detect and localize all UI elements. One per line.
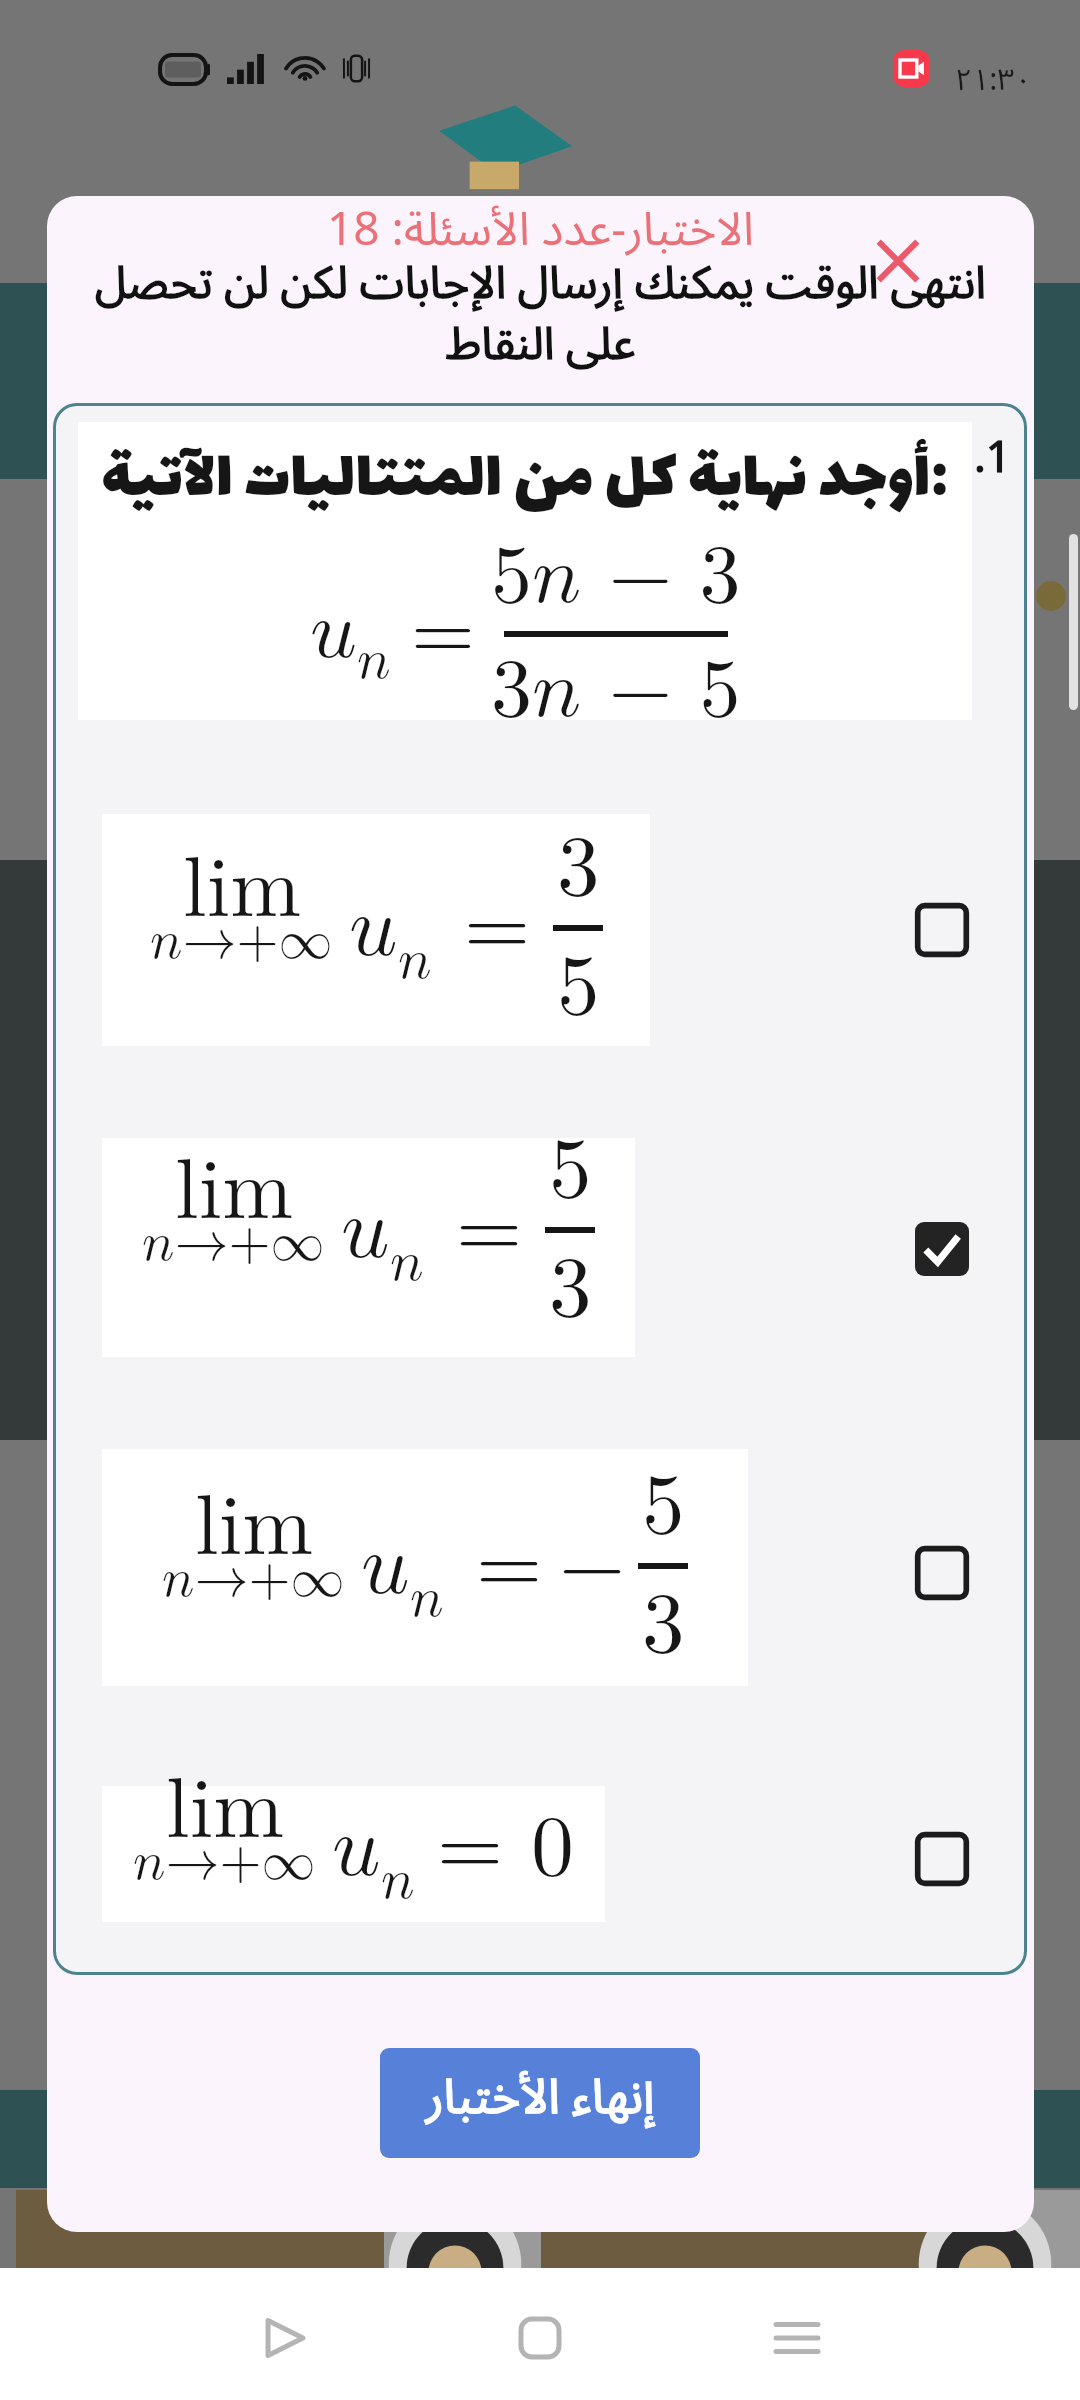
staticText: 𝑢 <box>361 1524 410 1609</box>
staticText: 5 <box>642 1464 685 1549</box>
staticText: الاختبار-عدد الأسئلة: 18 <box>327 196 754 279</box>
button[interactable]: lim <box>102 1138 635 1357</box>
staticText: 3 <box>557 826 600 911</box>
staticText: 𝑛→+∞ <box>150 914 333 968</box>
staticText: 𝑛→+∞ <box>142 1216 325 1270</box>
staticText: 5𝑛 − 3 <box>491 536 741 618</box>
staticText: 𝑛 <box>390 1235 424 1291</box>
button[interactable]: Select answer <box>903 1534 981 1612</box>
staticText: = <box>456 1188 523 1273</box>
staticText: 𝑛→+∞ <box>162 1552 345 1606</box>
button[interactable]: Screen recording <box>893 50 930 87</box>
staticText: = <box>464 886 531 971</box>
staticText: 3𝑛 − 5 <box>491 650 741 732</box>
staticText: 𝑛 <box>357 633 391 689</box>
staticText: lim <box>195 1485 314 1570</box>
staticText: .1 <box>974 412 1011 505</box>
staticText: إنهاء الأختبار <box>426 2048 655 2148</box>
staticText: أوجد نهاية كل من المتتاليات الآتية: <box>101 426 949 536</box>
staticText: lim <box>166 1768 285 1853</box>
button[interactable]: Select answer <box>903 1820 981 1898</box>
staticText: = <box>411 593 475 675</box>
staticText: = <box>476 1524 543 1609</box>
staticText: − <box>559 1524 626 1609</box>
staticText: 3 <box>642 1583 685 1668</box>
button[interactable]: Select answer <box>903 891 981 969</box>
staticText: 𝑛→+∞ <box>133 1835 316 1886</box>
staticText: 5 <box>557 945 600 1030</box>
button[interactable]: Selected answer <box>903 1210 981 1288</box>
staticText: lim <box>175 1149 294 1234</box>
button[interactable]: lim <box>102 1786 605 1922</box>
staticText: ٢١:٣٠ <box>955 49 1032 112</box>
staticText: = 0 <box>437 1806 574 1891</box>
staticText: 3 <box>549 1247 592 1332</box>
staticText: lim <box>183 847 302 932</box>
button[interactable]: Home <box>480 2278 600 2398</box>
button[interactable]: Back <box>224 2278 344 2398</box>
staticText: انتهى الوقت يمكنك إرسال الإجابات لكن لن … <box>75 236 1006 392</box>
button[interactable]: إنهاء الأختبار <box>380 2048 700 2158</box>
button[interactable]: lim <box>102 1449 748 1686</box>
staticText: 𝑢 <box>341 1188 390 1273</box>
button[interactable]: Recents <box>737 2278 857 2398</box>
button[interactable]: lim <box>102 814 650 1046</box>
staticText: 5 <box>549 1128 592 1213</box>
staticText: 𝑛 <box>398 933 432 989</box>
staticText: 𝑢 <box>349 886 398 971</box>
staticText: 𝑛 <box>381 1853 415 1909</box>
staticText: 𝑢 <box>332 1806 381 1891</box>
staticText: 𝑛 <box>410 1571 444 1627</box>
staticText: 𝑢 <box>310 591 357 673</box>
